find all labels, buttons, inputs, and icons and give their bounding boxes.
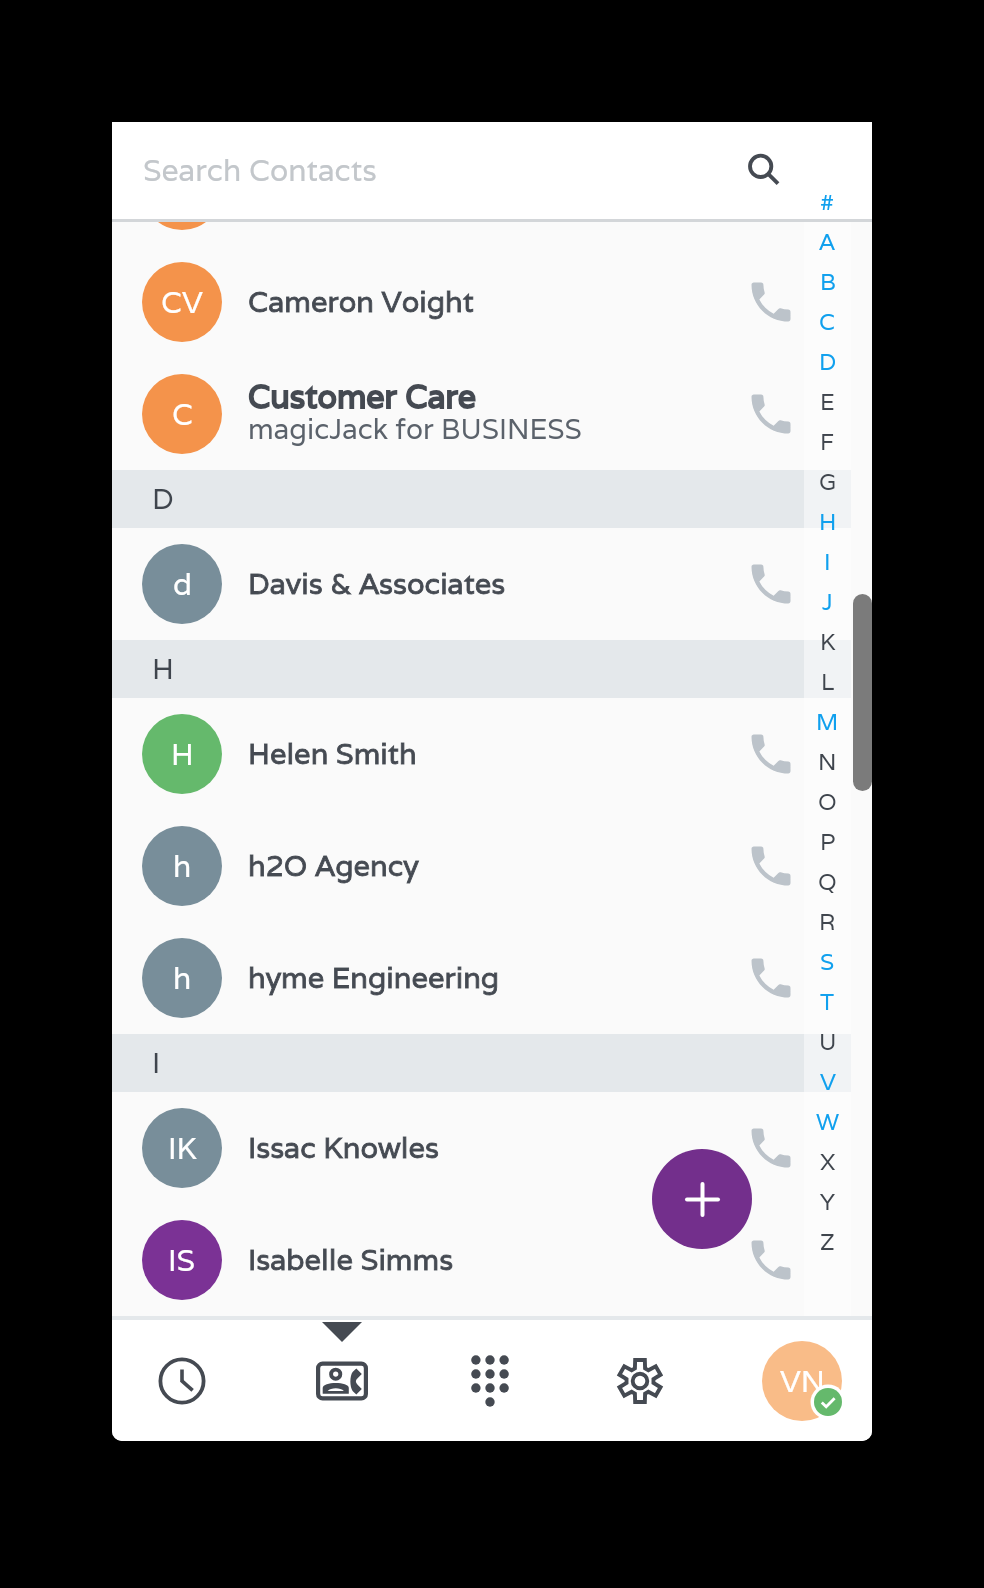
button[interactable]: B (804, 262, 851, 302)
button[interactable]: M (804, 702, 851, 742)
button[interactable]: h (112, 810, 851, 922)
staticText: E (820, 387, 835, 417)
staticText: D (819, 347, 837, 377)
button[interactable]: Search Contacts (112, 122, 872, 219)
button[interactable]: W (804, 1102, 851, 1142)
staticText: CV (161, 283, 203, 322)
button[interactable]: O (804, 782, 851, 822)
staticText: Cameron Voight (248, 283, 474, 321)
button[interactable]: S (804, 942, 851, 982)
button[interactable]: J (804, 582, 851, 622)
staticText: Davis & Associates (248, 565, 506, 603)
button[interactable]: h (112, 922, 851, 1034)
staticText: VN (780, 1362, 825, 1401)
staticText: h (173, 959, 192, 998)
staticText: U (819, 1027, 837, 1057)
button[interactable]: D (804, 342, 851, 382)
button[interactable]: Dialpad (434, 1320, 546, 1441)
button[interactable]: Call Customer Care (708, 358, 804, 470)
button[interactable]: U (804, 1022, 851, 1062)
button[interactable]: R (804, 902, 851, 942)
button[interactable]: Account (746, 1320, 858, 1441)
button[interactable]: IK (112, 1092, 851, 1204)
button[interactable]: K (804, 622, 851, 662)
staticText: S (820, 947, 835, 977)
button[interactable]: Settings (584, 1320, 696, 1441)
button[interactable]: CV (112, 246, 851, 358)
staticText: X (820, 1147, 836, 1177)
staticText: V (820, 1067, 836, 1097)
staticText: N (818, 747, 837, 777)
staticText: Helen Smith (248, 735, 417, 773)
button[interactable]: C (804, 302, 851, 342)
staticText: Davis & Associates (248, 565, 506, 603)
staticText: H (819, 507, 837, 537)
button[interactable]: Call Isabelle Simms (708, 1204, 804, 1316)
staticText: H (152, 650, 174, 688)
button[interactable]: X (804, 1142, 851, 1182)
staticText: h (173, 847, 192, 886)
button[interactable]: Contacts (286, 1320, 398, 1441)
button[interactable]: C (112, 358, 851, 470)
staticText: R (819, 907, 836, 937)
button[interactable]: d (112, 528, 851, 640)
button[interactable]: Z (804, 1222, 851, 1262)
staticText: Issac Knowles (248, 1129, 439, 1167)
staticText: Cameron Voight (248, 283, 474, 321)
staticText: Helen Smith (248, 735, 417, 773)
staticText: P (820, 827, 836, 857)
staticText: Z (820, 1227, 835, 1257)
staticText: # (820, 187, 835, 217)
button[interactable]: H (112, 698, 851, 810)
staticText: d (173, 565, 192, 604)
staticText: G (819, 467, 837, 497)
staticText: Search Contacts (143, 151, 377, 190)
button[interactable]: T (804, 982, 851, 1022)
button[interactable]: Call Cameron Voight (708, 246, 804, 358)
staticText: h2O Agency (248, 847, 419, 885)
button[interactable]: Call Helen Smith (708, 698, 804, 810)
staticText: Isabelle Simms (248, 1241, 454, 1279)
button[interactable]: E (804, 382, 851, 422)
staticText: M (816, 707, 839, 737)
staticText: L (821, 667, 835, 697)
staticText: C (819, 307, 836, 337)
staticText: Customer Care (248, 376, 477, 418)
button[interactable]: A (804, 222, 851, 262)
button[interactable]: Call Davis & Associates (708, 528, 804, 640)
staticText: I (824, 547, 831, 577)
staticText: Issac Knowles (248, 1129, 439, 1167)
staticText: D (152, 480, 174, 518)
button[interactable]: # (804, 182, 851, 222)
button[interactable]: Y (804, 1182, 851, 1222)
staticText: Isabelle Simms (248, 1241, 454, 1279)
button[interactable]: G (804, 462, 851, 502)
staticText: T (820, 987, 835, 1017)
staticText: magicJack for BUSINESS (248, 411, 582, 447)
staticText: Q (818, 867, 837, 897)
button[interactable]: IS (112, 1204, 851, 1316)
button[interactable]: N (804, 742, 851, 782)
staticText: F (820, 427, 835, 457)
button[interactable]: Call hyme Engineering (708, 922, 804, 1034)
staticText: hyme Engineering (248, 959, 500, 997)
button[interactable]: L (804, 662, 851, 702)
staticText: C (172, 395, 193, 434)
button[interactable]: Add contact (652, 1149, 752, 1249)
staticText: K (820, 627, 836, 657)
staticText: Y (820, 1187, 835, 1217)
button[interactable]: Recents (126, 1320, 238, 1441)
button[interactable]: P (804, 822, 851, 862)
button[interactable]: F (804, 422, 851, 462)
staticText: I (152, 1044, 161, 1082)
button[interactable]: Q (804, 862, 851, 902)
staticText: hyme Engineering (248, 959, 500, 997)
button[interactable]: V (804, 1062, 851, 1102)
staticText: h2O Agency (248, 847, 419, 885)
staticText: IK (168, 1129, 197, 1168)
staticText: Customer Care (248, 376, 477, 418)
button[interactable]: Call h2O Agency (708, 810, 804, 922)
button[interactable]: I (804, 542, 851, 582)
button[interactable]: Call Issac Knowles (708, 1092, 804, 1204)
button[interactable]: H (804, 502, 851, 542)
